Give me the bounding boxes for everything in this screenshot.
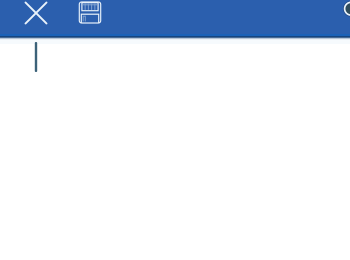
button[interactable]: Note text bbox=[0, 0, 350, 216]
button[interactable]: Close bbox=[0, 0, 40, 32]
button[interactable]: Save bbox=[0, 0, 40, 32]
